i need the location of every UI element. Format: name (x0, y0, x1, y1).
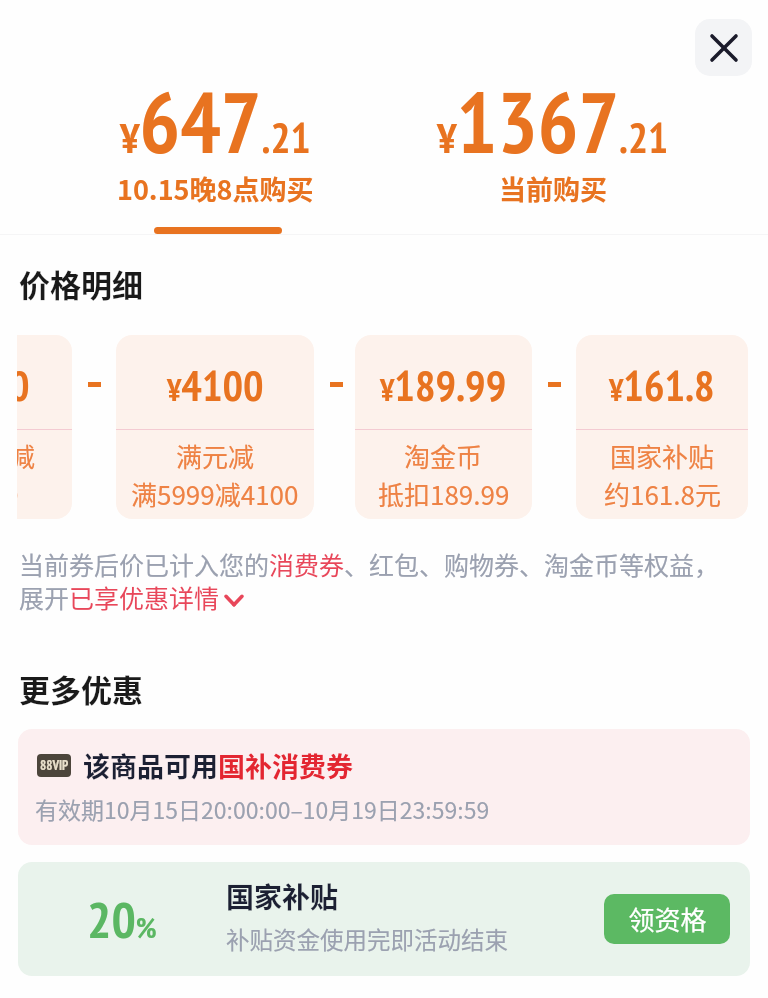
staticText: 补贴资金使用完即活动结束 (226, 922, 508, 956)
staticText: 10.15晚8点购买 (117, 169, 314, 208)
staticText: 当前券后价已计入您的消费券、红包、购物券、淘金币等权益， 展开已享优惠详情 (19, 546, 720, 616)
staticText: 淘金币 (404, 437, 483, 475)
staticText: ¥1367.21 (437, 66, 669, 176)
staticText: 国家补贴 (610, 437, 715, 475)
button[interactable]: ¥1367.21 (437, 66, 669, 215)
staticText: 88VIP (40, 757, 69, 774)
staticText: 国家补贴 (226, 876, 339, 917)
staticText: ¥189.99 (380, 357, 507, 413)
button[interactable]: ¥161.8 (576, 335, 748, 519)
staticText: 价格明细 (19, 261, 143, 306)
staticText: 领资格 (628, 900, 707, 938)
staticText: ¥161.8 (609, 357, 715, 413)
staticText: 满元减 (176, 437, 255, 475)
staticText: ¥4100 (167, 357, 264, 413)
button[interactable]: 领资格 (604, 894, 730, 944)
staticText: ¥3000 (17, 357, 30, 413)
staticText: 更多优惠 (19, 666, 143, 711)
staticText: 有效期10月15日20:00:00–10月19日23:59:59 (35, 792, 490, 825)
staticText: 满3999减3000 (17, 475, 19, 513)
button[interactable]: ¥189.99 (355, 335, 532, 519)
staticText: 抵扣189.99 (378, 475, 510, 513)
staticText: ¥647.21 (120, 66, 311, 176)
button[interactable]: Close (695, 19, 752, 76)
staticText: 当前购买 (499, 169, 607, 208)
staticText: 满元减 (17, 437, 36, 475)
staticText: 约161.8元 (604, 475, 721, 513)
button[interactable]: 88VIP (18, 729, 750, 845)
button[interactable]: ¥3000 (17, 335, 72, 519)
staticText: 20% (87, 886, 157, 952)
button[interactable]: ¥4100 (116, 335, 314, 519)
staticText: 满5999减4100 (131, 475, 299, 513)
button[interactable]: ¥647.21 (117, 66, 314, 215)
staticText: 该商品可用国补消费券 (83, 746, 353, 785)
button[interactable]: 20% (18, 862, 750, 976)
